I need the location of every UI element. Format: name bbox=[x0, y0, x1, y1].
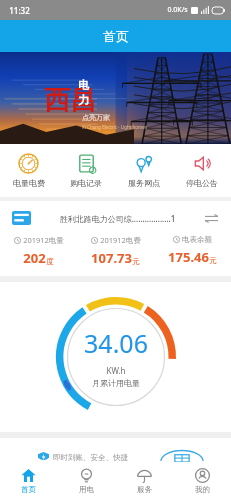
staticText: 34.06 bbox=[84, 326, 148, 360]
button[interactable]: 我的 bbox=[173, 465, 231, 497]
button[interactable]: 电量电费 bbox=[0, 151, 57, 190]
staticText: 107.73 bbox=[91, 249, 132, 267]
button[interactable]: 购电记录 bbox=[57, 151, 115, 190]
button[interactable]: 服务 bbox=[115, 465, 173, 497]
staticText: 202 bbox=[23, 249, 46, 267]
staticText: 度 bbox=[46, 257, 54, 266]
button[interactable]: 停电公告 bbox=[173, 151, 231, 190]
staticText: 服务 bbox=[137, 485, 152, 494]
staticText: 175.46 bbox=[168, 248, 209, 266]
staticText: 点亮万家 bbox=[82, 113, 110, 122]
button[interactable]: 切换户号 bbox=[203, 210, 219, 226]
staticText: 停电公告 bbox=[186, 178, 218, 188]
staticText: 201912电费 bbox=[100, 235, 141, 245]
button[interactable]: 201912电量 bbox=[0, 235, 77, 267]
staticText: 我的 bbox=[195, 485, 210, 494]
staticText: 购电记录 bbox=[70, 178, 102, 188]
staticText: 首页 bbox=[21, 485, 36, 494]
staticText: 首页 bbox=[103, 28, 129, 44]
staticText: 力 bbox=[78, 93, 89, 107]
staticText: 用电 bbox=[79, 485, 94, 494]
staticText: 服务网点 bbox=[128, 178, 160, 188]
staticText: 11:32 bbox=[9, 5, 30, 16]
staticText: 元 bbox=[132, 257, 140, 266]
button[interactable]: 首页 bbox=[0, 465, 57, 497]
button[interactable]: 服务网点 bbox=[115, 151, 173, 190]
staticText: 电量电费 bbox=[13, 178, 45, 188]
button[interactable]: 电表余额 bbox=[154, 235, 231, 266]
staticText: 胜利北路电力公司综..................1 bbox=[38, 213, 197, 224]
button[interactable]: 201912电费 bbox=[77, 235, 154, 267]
staticText: 电 bbox=[78, 78, 89, 92]
staticText: 0.0K/s bbox=[167, 5, 188, 15]
staticText: KW.h bbox=[106, 365, 126, 376]
staticText: 元 bbox=[209, 256, 217, 265]
button[interactable]: 胜利北路电力公司综..................1 bbox=[0, 208, 231, 228]
button[interactable]: 西昌 bbox=[0, 52, 231, 144]
staticText: 即时到账、安全、快捷 bbox=[53, 453, 128, 462]
staticText: Xi Chang Electric · Light homes bbox=[82, 124, 147, 130]
staticText: 201912电量 bbox=[23, 235, 64, 245]
staticText: 月累计用电量 bbox=[92, 378, 140, 388]
button[interactable]: 用电 bbox=[57, 465, 115, 497]
button[interactable]: 34.06 bbox=[0, 282, 231, 432]
staticText: 西昌 bbox=[44, 84, 96, 117]
button[interactable]: 即时到账、安全、快捷 bbox=[0, 438, 231, 462]
staticText: 电表余额 bbox=[182, 235, 212, 244]
